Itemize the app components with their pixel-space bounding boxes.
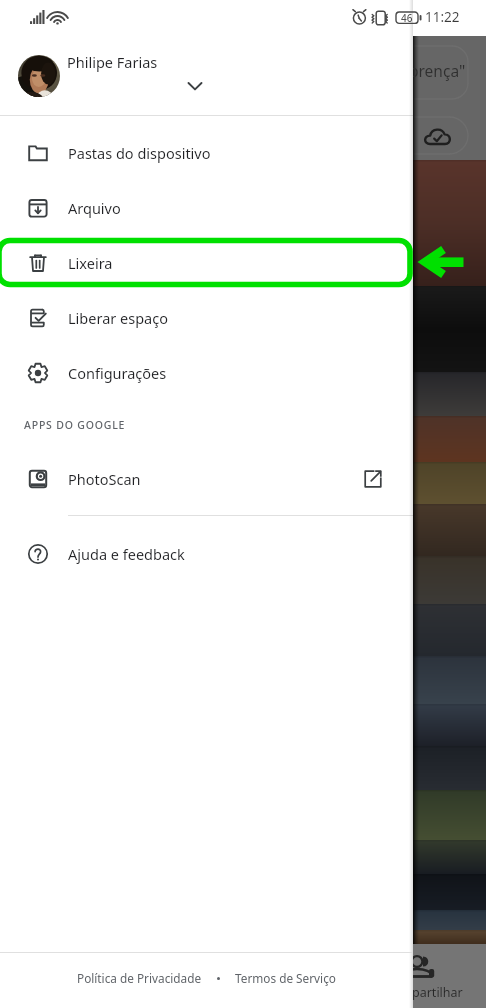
button[interactable]: Lixeira bbox=[0, 235, 413, 290]
staticText: 46 bbox=[401, 11, 413, 25]
staticText: Lixeira bbox=[68, 253, 113, 273]
button[interactable]: Arquivo bbox=[0, 180, 413, 235]
staticText: Configurações bbox=[68, 363, 167, 383]
button[interactable]: Philipe Farias bbox=[0, 36, 413, 115]
other: Expand account list bbox=[183, 74, 207, 98]
staticText: Pastas do dispositivo bbox=[68, 143, 211, 163]
staticText: APPS DO GOOGLE bbox=[24, 418, 126, 432]
staticText: 11:22 bbox=[425, 8, 460, 26]
button[interactable]: Configurações bbox=[0, 345, 413, 400]
staticText: prença" bbox=[409, 60, 466, 81]
button[interactable]: Termos de Serviço bbox=[235, 970, 336, 986]
staticText: Ajuda e feedback bbox=[68, 544, 185, 564]
button[interactable]: Pastas do dispositivo bbox=[0, 125, 413, 180]
staticText: Philipe Farias bbox=[67, 52, 158, 72]
button[interactable]: PhotoScan bbox=[0, 451, 413, 506]
staticText: Liberar espaço bbox=[68, 308, 168, 328]
staticText: Arquivo bbox=[68, 198, 121, 218]
staticText: PhotoScan bbox=[68, 469, 141, 489]
button[interactable]: Política de Privacidade bbox=[77, 970, 202, 986]
button[interactable]: Ajuda e feedback bbox=[0, 526, 413, 581]
staticText: partilhar bbox=[412, 984, 463, 1001]
button[interactable]: Liberar espaço bbox=[0, 290, 413, 345]
